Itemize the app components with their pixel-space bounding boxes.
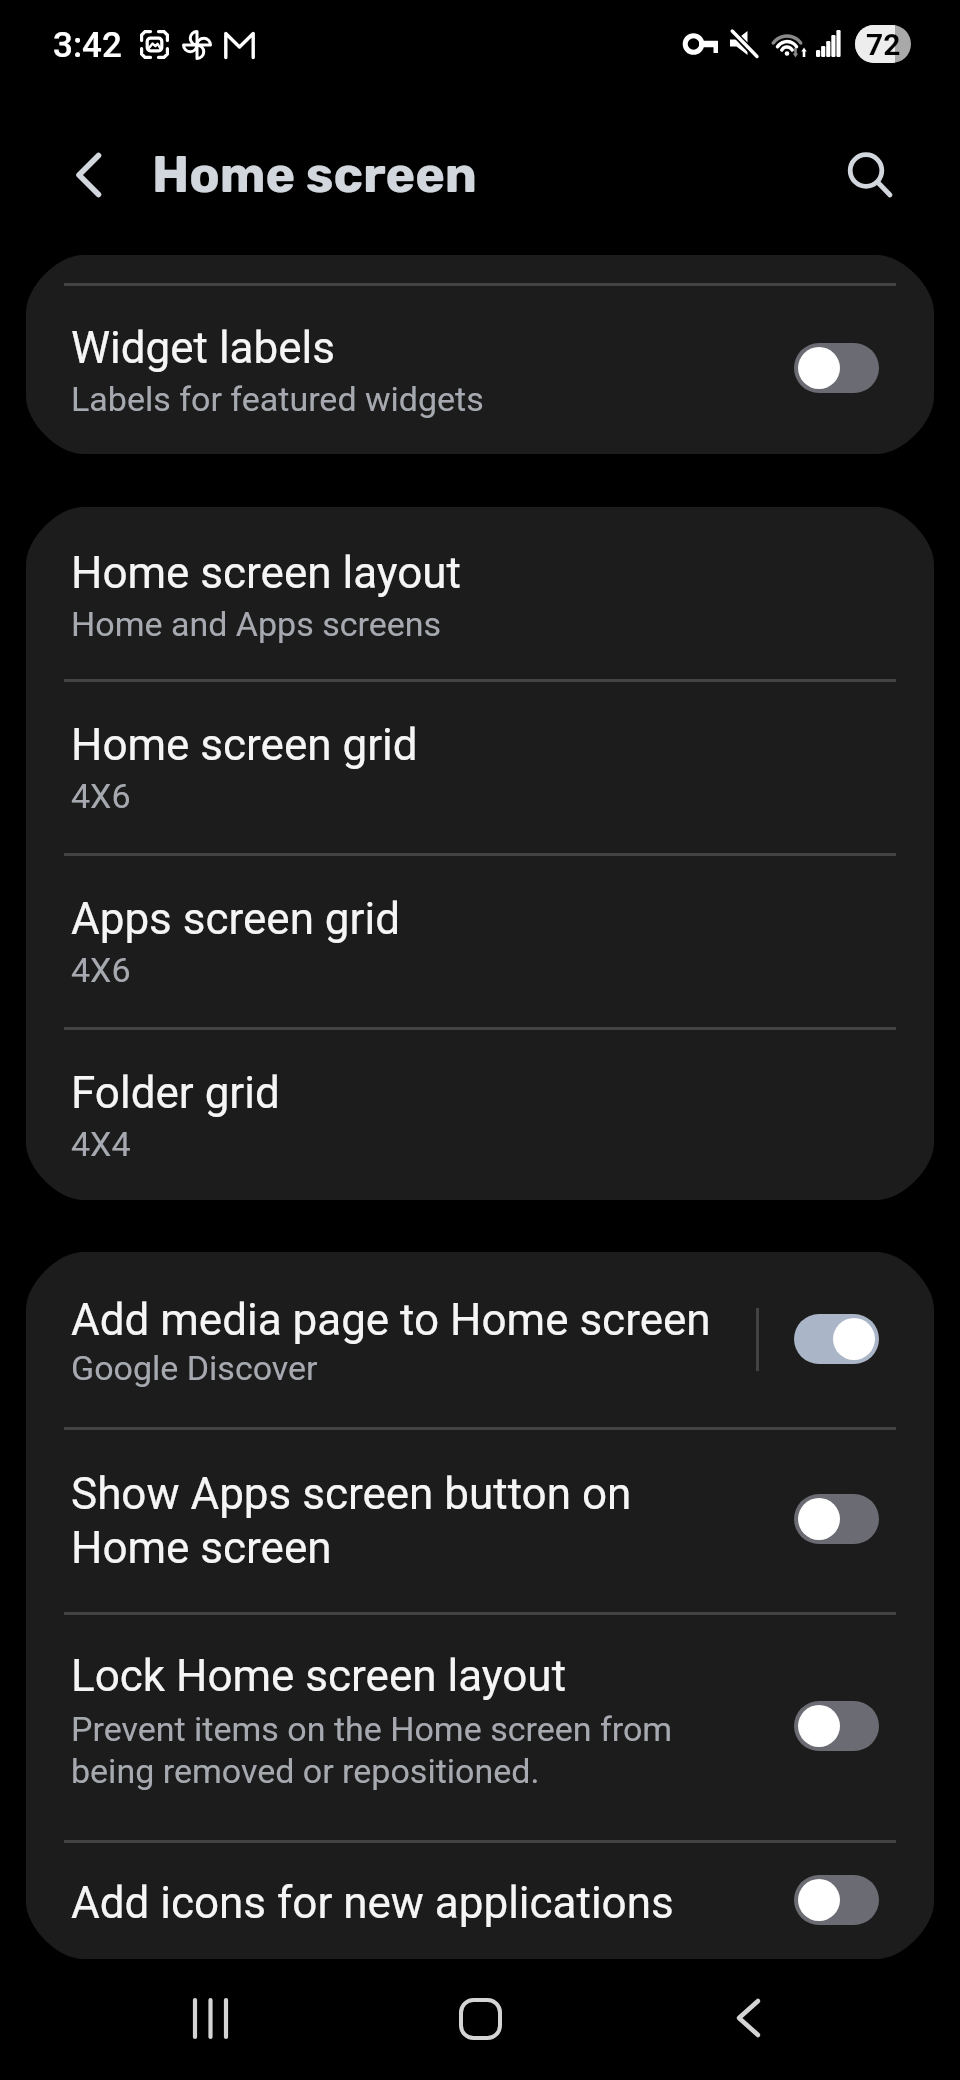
button[interactable]: Widget labels, off (794, 343, 879, 393)
button[interactable]: Lock Home screen layout, off (794, 1701, 879, 1751)
button[interactable]: Lock Home screen layout (26, 1612, 934, 1840)
button[interactable]: Add media page to Home screen (26, 1252, 934, 1427)
button[interactable]: Navigate up (34, 131, 122, 219)
staticText: 4X4 (71, 1124, 131, 1164)
button[interactable]: Home screen grid (26, 679, 934, 853)
button[interactable]: Back (690, 1958, 810, 2078)
staticText: Add media page to Home screen (71, 1294, 711, 1346)
staticText: Labels for featured widgets (71, 379, 484, 419)
staticText: 3:42 (53, 25, 122, 66)
button[interactable]: Add icons for new applications (26, 1840, 934, 1959)
staticText: 72 (866, 27, 901, 62)
staticText: Home screen layout (71, 547, 461, 599)
staticText: Home screen (152, 145, 477, 204)
staticText: Home screen (71, 1522, 332, 1574)
button[interactable]: Folder grid (26, 1027, 934, 1200)
staticText: 4X6 (71, 776, 131, 816)
button[interactable]: Apps screen grid (26, 853, 934, 1027)
button[interactable]: Recent apps (150, 1958, 270, 2078)
staticText: Apps screen grid (71, 893, 400, 945)
staticText: Widget labels (71, 322, 335, 374)
button[interactable]: Home screen layout (26, 507, 934, 679)
staticText: 4X6 (71, 950, 131, 990)
button[interactable]: Home (420, 1958, 540, 2078)
staticText: Show Apps screen button on (71, 1468, 632, 1520)
staticText: Home and Apps screens (71, 604, 442, 644)
button[interactable]: Show Apps screen button on (26, 1427, 934, 1612)
button[interactable]: Add icons for new applications, off (794, 1875, 879, 1925)
staticText: Prevent items on the Home screen from (71, 1709, 673, 1749)
staticText: Google Discover (71, 1348, 318, 1388)
button[interactable]: Widget labels (26, 255, 934, 454)
button[interactable]: Add media page to Home screen, on (794, 1314, 879, 1364)
staticText: Add icons for new applications (71, 1877, 674, 1929)
staticText: Folder grid (71, 1067, 280, 1119)
staticText: Lock Home screen layout (71, 1650, 567, 1702)
button[interactable]: Show Apps screen button on Home screen, … (794, 1494, 879, 1544)
staticText: being removed or repositioned. (71, 1751, 540, 1791)
staticText: Home screen grid (71, 719, 418, 771)
button[interactable]: Search (822, 127, 910, 215)
